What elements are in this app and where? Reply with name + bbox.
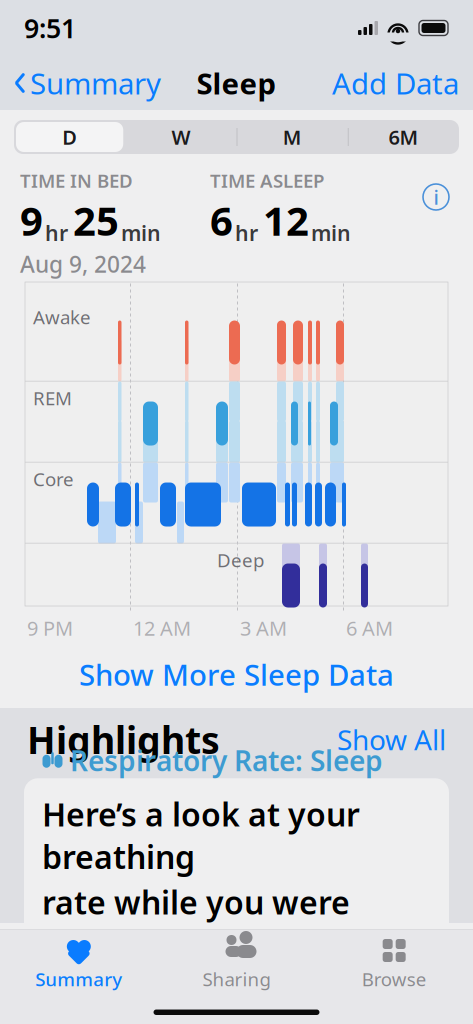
button[interactable]: About sleep data xyxy=(419,180,453,214)
staticText: Browse xyxy=(362,966,427,991)
staticText: 6 xyxy=(210,194,233,247)
button[interactable]: M xyxy=(236,120,348,154)
staticText: hr xyxy=(235,219,258,247)
button[interactable]: Summary xyxy=(14,57,161,108)
staticText: 9 PM xyxy=(27,615,73,641)
staticText: 9:51 xyxy=(24,10,76,46)
staticText: Sleep xyxy=(196,63,276,102)
staticText: Here’s a look at your breathing xyxy=(42,793,360,878)
staticText: 25 xyxy=(73,194,119,247)
button[interactable]: Add Data xyxy=(332,57,459,108)
staticText: min xyxy=(311,219,351,247)
staticText: Aug 9, 2024 xyxy=(20,249,146,279)
button[interactable]: Sharing xyxy=(158,929,315,991)
staticText: W xyxy=(171,124,190,150)
staticText: Deep xyxy=(217,547,264,572)
staticText: rate while you were sleeping. xyxy=(42,881,350,966)
staticText: 6 AM xyxy=(346,615,393,641)
staticText: D xyxy=(62,124,77,150)
staticText: 3 AM xyxy=(240,615,287,641)
staticText: 6M xyxy=(388,124,418,150)
staticText: TIME ASLEEP xyxy=(210,168,324,193)
staticText: Summary xyxy=(35,966,122,991)
staticText: Sharing xyxy=(202,966,270,991)
staticText: Highlights xyxy=(27,715,220,764)
staticText: 12 xyxy=(263,194,309,247)
staticText: i xyxy=(433,184,438,210)
staticText: min xyxy=(121,219,161,247)
staticText: Summary xyxy=(30,63,161,102)
staticText: Awake xyxy=(33,304,91,329)
button[interactable]: W xyxy=(125,120,236,154)
button[interactable]: Browse xyxy=(315,929,473,991)
staticText: Respiratory Rate: Sleep xyxy=(70,742,383,779)
staticText: 12 AM xyxy=(133,615,191,641)
staticText: REM xyxy=(33,385,72,410)
button[interactable]: D xyxy=(14,120,125,154)
staticText: M xyxy=(283,124,302,150)
staticText: Show More Sleep Data xyxy=(79,655,394,694)
staticText: Add Data xyxy=(332,63,459,102)
staticText: 9 xyxy=(20,194,43,247)
button[interactable]: 6M xyxy=(348,120,459,154)
staticText: Show All xyxy=(337,721,446,758)
button[interactable]: Summary xyxy=(0,929,158,991)
staticText: TIME IN BED xyxy=(20,168,133,193)
staticText: Core xyxy=(33,466,74,491)
button[interactable]: Show More Sleep Data xyxy=(0,641,473,708)
staticText: hr xyxy=(45,219,68,247)
button[interactable]: Respiratory Rate: Sleep xyxy=(0,764,473,938)
button[interactable]: Show All xyxy=(337,717,446,762)
